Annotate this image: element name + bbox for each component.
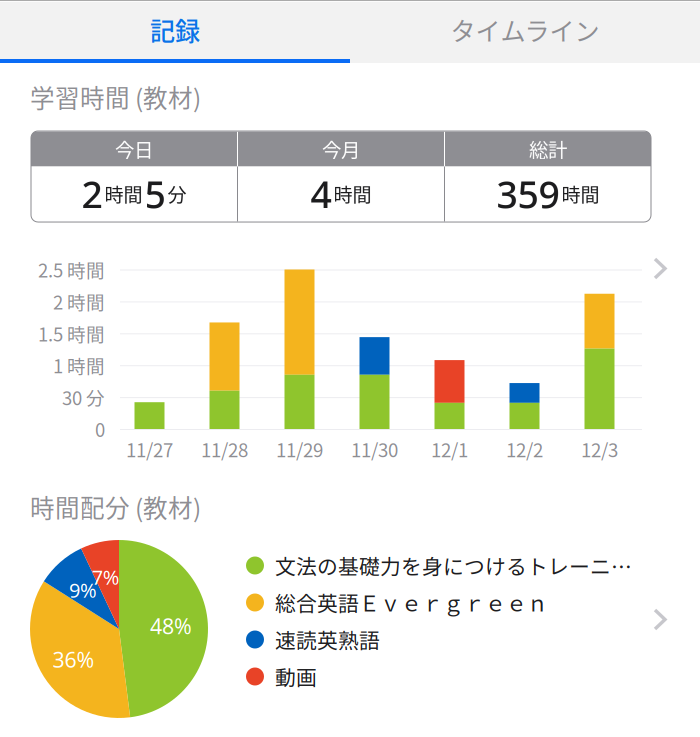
staticText: 359	[496, 169, 559, 219]
staticText: 時間配分 (教材)	[30, 489, 201, 524]
staticText: 11/29	[276, 435, 323, 462]
staticText: 2 時間	[53, 288, 105, 315]
staticText: 48%	[150, 612, 192, 640]
button[interactable]: タイムライン	[350, 0, 700, 63]
staticText: 12/1	[431, 435, 468, 462]
button[interactable]: 学習時間の詳細	[0, 0, 700, 470]
button[interactable]: 時間配分の詳細	[0, 0, 700, 737]
staticText: 1.5 時間	[38, 320, 105, 347]
staticText: タイムライン	[450, 11, 599, 48]
staticText: 30 分	[62, 384, 105, 410]
staticText: 2	[81, 169, 102, 219]
staticText: 7%	[92, 564, 120, 590]
staticText: 12/3	[581, 435, 618, 462]
staticText: 11/27	[126, 435, 173, 462]
staticText: 9%	[69, 577, 97, 603]
staticText: 11/28	[201, 435, 248, 462]
staticText: 12/2	[506, 435, 543, 462]
staticText: 文法の基礎力を身につけるトレーニ…	[275, 550, 632, 580]
staticText: 記録	[150, 11, 200, 48]
staticText: 0	[95, 416, 105, 442]
staticText: 5	[144, 169, 165, 219]
staticText: 4	[310, 169, 331, 219]
staticText: 36%	[52, 645, 94, 674]
staticText: 動画	[275, 661, 317, 691]
staticText: 今月	[322, 135, 360, 163]
staticText: 時間	[561, 180, 599, 208]
staticText: 分	[167, 180, 186, 208]
staticText: 総合英語Ｅｖｅｒｇｒｅｅｎ	[275, 587, 548, 617]
staticText: 学習時間 (教材)	[30, 79, 201, 114]
staticText: 時間	[104, 180, 142, 208]
staticText: 2.5 時間	[38, 256, 105, 283]
staticText: 今日	[115, 135, 153, 163]
staticText: 総計	[529, 135, 567, 163]
staticText: 11/30	[351, 435, 398, 462]
staticText: 時間	[333, 180, 371, 208]
staticText: 1 時間	[53, 352, 105, 379]
staticText: 速読英熟語	[275, 624, 380, 654]
button[interactable]: 記録	[0, 0, 350, 63]
